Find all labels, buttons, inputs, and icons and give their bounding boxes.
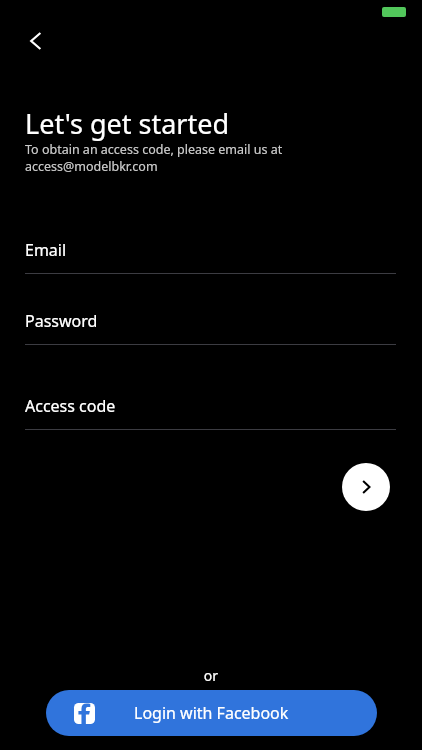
staticText: To obtain an access code, please email u… xyxy=(25,141,283,174)
staticText: Login with Facebook xyxy=(134,702,289,724)
button[interactable]: Access code xyxy=(25,395,396,430)
button[interactable]: Email xyxy=(25,239,396,274)
button[interactable]: Next xyxy=(342,463,390,511)
staticText: Let's get started xyxy=(25,105,230,142)
staticText: or xyxy=(0,666,422,685)
button[interactable]: Login with Facebook xyxy=(46,690,377,736)
staticText: Password xyxy=(25,310,98,332)
staticText: Email xyxy=(25,239,67,261)
button[interactable]: Password xyxy=(25,310,396,345)
staticText: Access code xyxy=(25,395,116,417)
button[interactable]: Back xyxy=(14,19,58,63)
